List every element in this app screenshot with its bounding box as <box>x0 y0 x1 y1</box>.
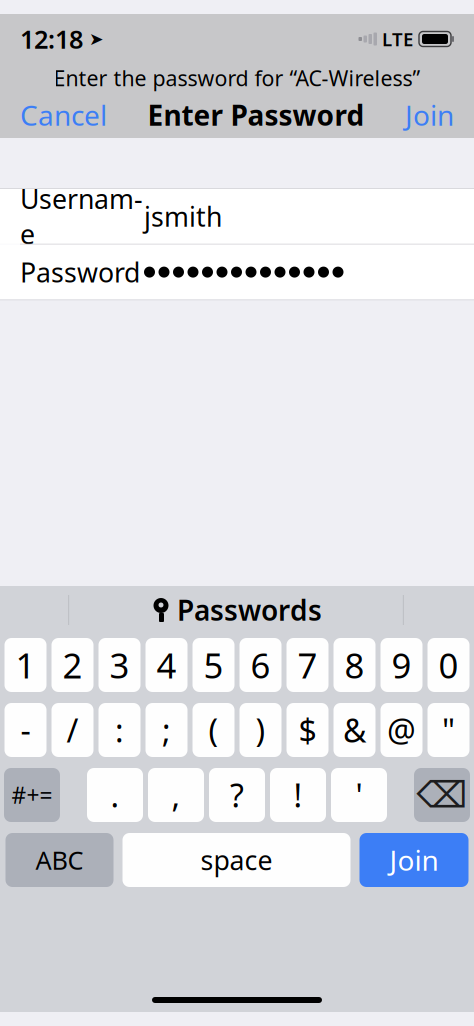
button[interactable]: Join <box>385 92 474 138</box>
staticText: 4 <box>156 642 176 688</box>
staticText: ( <box>208 709 218 751</box>
button[interactable]: 8 <box>333 638 375 692</box>
staticText: ! <box>293 774 302 816</box>
staticText: 5 <box>203 642 223 688</box>
button[interactable]: . <box>87 768 143 822</box>
button[interactable]: $ <box>286 703 328 757</box>
button[interactable]: & <box>333 703 375 757</box>
staticText: 0 <box>438 642 458 688</box>
staticText: Passwords <box>177 591 322 629</box>
button[interactable]: ( <box>192 703 234 757</box>
staticText: " <box>442 709 455 751</box>
button[interactable]: Join <box>359 833 468 887</box>
button[interactable]: Delete <box>414 768 470 822</box>
staticText: ⌫ <box>416 775 467 815</box>
button[interactable]: @ <box>380 703 422 757</box>
button[interactable]: 7 <box>286 638 328 692</box>
button[interactable]: space <box>122 833 350 887</box>
staticText: - <box>20 709 30 751</box>
button[interactable]: Passwords <box>136 588 338 632</box>
button[interactable]: 9 <box>380 638 422 692</box>
staticText: 1 <box>15 642 35 688</box>
button[interactable]: ; <box>145 703 187 757</box>
button[interactable]: #+= <box>4 768 60 822</box>
button[interactable]: 3 <box>98 638 140 692</box>
button[interactable]: ) <box>239 703 281 757</box>
button[interactable]: ABC <box>5 833 113 887</box>
button[interactable]: Password <box>0 245 474 300</box>
staticText: Cancel <box>20 96 107 134</box>
staticText: 3 <box>109 642 129 688</box>
staticText: , <box>171 774 180 816</box>
staticText: 7 <box>297 642 317 688</box>
staticText: jsmith <box>144 199 222 234</box>
staticText: ➤ <box>83 29 104 49</box>
staticText: 8 <box>344 642 364 688</box>
staticText: #+= <box>11 780 52 810</box>
button[interactable]: 5 <box>192 638 234 692</box>
button[interactable]: 2 <box>51 638 93 692</box>
staticText: Enter the password for “AC-Wireless” <box>53 64 420 92</box>
staticText: $ <box>298 709 316 751</box>
button[interactable]: - <box>4 703 46 757</box>
staticText: 2 <box>62 642 82 688</box>
button[interactable]: ? <box>209 768 265 822</box>
button[interactable]: 0 <box>427 638 469 692</box>
staticText: Password <box>20 254 140 290</box>
button[interactable]: , <box>148 768 204 822</box>
staticText: 9 <box>391 642 411 688</box>
staticText: LTE <box>382 27 413 51</box>
staticText: / <box>66 709 78 751</box>
button[interactable]: Cancel <box>0 92 127 138</box>
button[interactable]: / <box>51 703 93 757</box>
button[interactable]: ' <box>331 768 387 822</box>
staticText: space <box>200 842 272 878</box>
staticText: ; <box>162 709 171 751</box>
button[interactable]: 4 <box>145 638 187 692</box>
staticText: Join <box>405 96 454 134</box>
staticText: & <box>343 709 366 751</box>
staticText: ? <box>230 774 244 816</box>
staticText: Join <box>389 841 438 879</box>
staticText: ABC <box>35 843 83 877</box>
staticText: @ <box>387 709 416 751</box>
button[interactable]: 6 <box>239 638 281 692</box>
staticText: ) <box>255 709 265 751</box>
staticText: Username <box>20 181 143 252</box>
staticText: Enter Password <box>147 96 364 134</box>
staticText: : <box>115 709 124 751</box>
button[interactable]: " <box>427 703 469 757</box>
button[interactable]: : <box>98 703 140 757</box>
staticText: . <box>110 774 119 816</box>
button[interactable]: 1 <box>4 638 46 692</box>
button[interactable]: ! <box>270 768 326 822</box>
staticText: 12:18 <box>20 22 83 56</box>
staticText: ' <box>355 774 362 816</box>
button[interactable]: Username <box>0 189 474 244</box>
staticText: 6 <box>250 642 270 688</box>
